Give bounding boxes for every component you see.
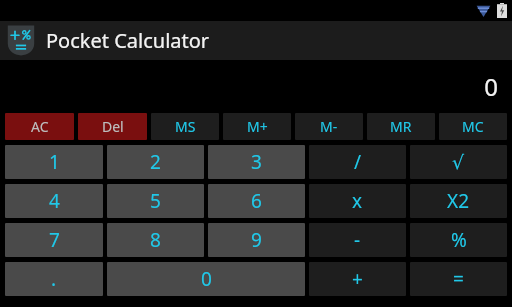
- staticText: MR: [390, 117, 412, 136]
- button[interactable]: 9: [208, 223, 305, 257]
- staticText: MC: [462, 117, 484, 136]
- staticText: X2: [447, 188, 470, 214]
- staticText: MS: [175, 117, 196, 136]
- button[interactable]: 5: [107, 184, 204, 218]
- staticText: M-: [320, 117, 338, 136]
- staticText: 7: [49, 227, 60, 253]
- button[interactable]: 1: [5, 145, 103, 179]
- button[interactable]: Del: [78, 113, 147, 140]
- staticText: √: [452, 151, 465, 173]
- staticText: Pocket Calculator: [46, 27, 210, 54]
- staticText: Del: [102, 117, 124, 136]
- staticText: 1: [49, 149, 60, 175]
- staticText: .: [51, 266, 57, 292]
- staticText: 8: [150, 227, 161, 253]
- staticText: M+: [247, 117, 268, 136]
- button[interactable]: MC: [439, 113, 507, 140]
- staticText: %: [451, 227, 467, 253]
- staticText: =: [453, 266, 464, 292]
- button[interactable]: MR: [367, 113, 435, 140]
- staticText: 5: [150, 188, 161, 214]
- button[interactable]: X2: [410, 184, 507, 218]
- staticText: x: [352, 188, 363, 214]
- button[interactable]: +: [309, 262, 406, 296]
- staticText: 0: [201, 266, 212, 292]
- button[interactable]: 0: [107, 262, 305, 296]
- staticText: 0: [484, 70, 498, 103]
- staticText: 4: [49, 188, 60, 214]
- button[interactable]: √: [410, 145, 507, 179]
- button[interactable]: M+: [223, 113, 291, 140]
- staticText: -: [354, 227, 361, 253]
- button[interactable]: =: [410, 262, 507, 296]
- staticText: AC: [31, 117, 49, 136]
- button[interactable]: M-: [295, 113, 363, 140]
- button[interactable]: 3: [208, 145, 305, 179]
- button[interactable]: /: [309, 145, 406, 179]
- button[interactable]: 7: [5, 223, 103, 257]
- button[interactable]: MS: [151, 113, 219, 140]
- staticText: +: [352, 266, 363, 292]
- staticText: 2: [150, 149, 161, 175]
- button[interactable]: .: [5, 262, 103, 296]
- staticText: /: [354, 149, 362, 175]
- staticText: 6: [251, 188, 262, 214]
- button[interactable]: 2: [107, 145, 204, 179]
- staticText: 3: [251, 149, 262, 175]
- button[interactable]: 4: [5, 184, 103, 218]
- button[interactable]: 6: [208, 184, 305, 218]
- button[interactable]: %: [410, 223, 507, 257]
- button[interactable]: -: [309, 223, 406, 257]
- button[interactable]: 8: [107, 223, 204, 257]
- button[interactable]: x: [309, 184, 406, 218]
- button[interactable]: AC: [5, 113, 74, 140]
- staticText: 9: [251, 227, 262, 253]
